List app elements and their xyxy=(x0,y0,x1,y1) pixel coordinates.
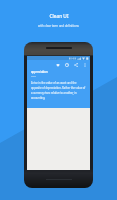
button[interactable]: More options xyxy=(81,61,89,69)
staticText: with clear term and definitions xyxy=(38,24,79,28)
staticText: appreciation xyxy=(31,70,48,74)
button[interactable]: History xyxy=(63,61,71,69)
button[interactable]: Share xyxy=(72,61,80,69)
staticText: A rise in the value of an asset and the … xyxy=(31,81,86,99)
staticText: Clean UI xyxy=(49,13,69,20)
button[interactable]: Favourite xyxy=(54,61,62,69)
staticText: noun xyxy=(31,75,36,78)
